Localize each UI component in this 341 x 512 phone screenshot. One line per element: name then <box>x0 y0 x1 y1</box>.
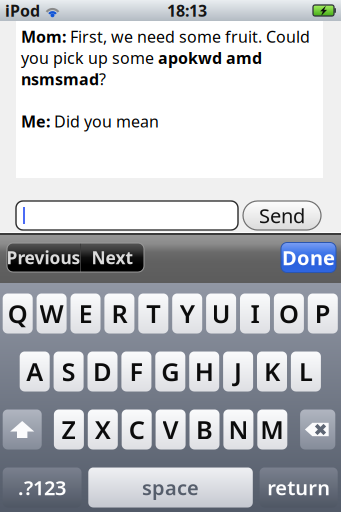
staticText: K <box>264 355 280 388</box>
staticText: R <box>111 297 127 330</box>
staticText: 18:13 <box>167 0 207 21</box>
staticText: F <box>129 355 143 388</box>
staticText: Y <box>180 297 195 330</box>
staticText: S <box>62 355 76 388</box>
button[interactable]: V <box>156 409 186 449</box>
button[interactable]: I <box>240 293 270 333</box>
staticText: Previous <box>6 246 80 269</box>
staticText: Send <box>259 202 305 229</box>
button[interactable]: G <box>155 351 185 391</box>
staticText: Me: Did you mean <box>21 111 159 132</box>
button[interactable]: Z <box>54 409 84 449</box>
button[interactable]: Previous <box>7 243 80 272</box>
staticText: O <box>279 297 299 330</box>
staticText: Next <box>91 246 133 269</box>
button[interactable]: space <box>88 467 253 507</box>
staticText: V <box>163 413 179 446</box>
button[interactable]: .?123 <box>3 467 81 507</box>
button[interactable]: U <box>206 293 236 333</box>
button[interactable]: N <box>223 409 253 449</box>
button[interactable]: W <box>37 293 67 333</box>
button[interactable]: A <box>20 351 50 391</box>
button[interactable] <box>16 201 238 230</box>
staticText: .?123 <box>18 474 66 501</box>
staticText: W <box>40 297 64 330</box>
staticText: C <box>129 413 145 446</box>
button[interactable]: S <box>54 351 84 391</box>
button[interactable]: Done <box>281 242 336 272</box>
button[interactable]: T <box>138 293 168 333</box>
button[interactable]: Delete <box>300 409 335 449</box>
staticText: Q <box>8 297 28 330</box>
staticText: B <box>196 413 213 446</box>
button[interactable]: X <box>88 409 118 449</box>
button[interactable]: Y <box>172 293 202 333</box>
staticText: A <box>26 355 43 388</box>
button[interactable]: return <box>260 467 338 507</box>
staticText: M <box>260 413 284 446</box>
staticText: Mom: First, we need some fruit. Could yo… <box>21 26 310 90</box>
staticText: return <box>267 474 330 501</box>
button[interactable]: O <box>274 293 304 333</box>
staticText: N <box>228 413 248 446</box>
button[interactable]: H <box>189 351 219 391</box>
staticText: D <box>93 355 112 388</box>
staticText: iPod <box>5 0 40 21</box>
staticText: Z <box>61 413 76 446</box>
button[interactable]: E <box>70 293 100 333</box>
button[interactable]: B <box>189 409 219 449</box>
staticText: P <box>315 297 331 330</box>
staticText: H <box>195 355 214 388</box>
button[interactable]: C <box>122 409 152 449</box>
button[interactable]: K <box>257 351 287 391</box>
button[interactable]: R <box>104 293 134 333</box>
button[interactable]: Send <box>243 201 321 230</box>
staticText: J <box>234 355 242 388</box>
button[interactable]: Next <box>81 243 144 272</box>
staticText: Done <box>282 244 335 271</box>
button[interactable]: Q <box>3 293 33 333</box>
staticText: X <box>95 413 111 446</box>
staticText: U <box>212 297 231 330</box>
button[interactable]: J <box>223 351 253 391</box>
staticText: G <box>161 355 179 388</box>
button[interactable]: L <box>291 351 321 391</box>
button[interactable]: P <box>308 293 338 333</box>
button[interactable]: M <box>257 409 287 449</box>
button[interactable]: Shift <box>3 409 42 449</box>
staticText: space <box>142 474 199 501</box>
staticText: E <box>78 297 92 330</box>
staticText: L <box>299 355 313 388</box>
button[interactable]: F <box>121 351 151 391</box>
staticText: I <box>250 297 259 330</box>
button[interactable]: D <box>87 351 117 391</box>
staticText: T <box>146 297 160 330</box>
